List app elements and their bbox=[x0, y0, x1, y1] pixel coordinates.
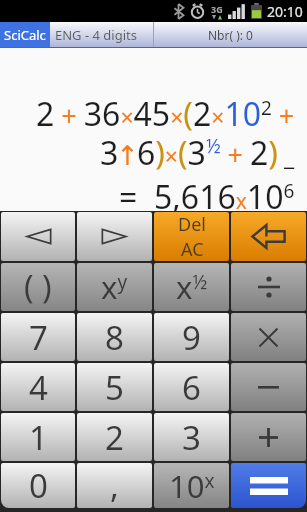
staticText: 20:10 bbox=[267, 2, 303, 21]
button[interactable]: 9 bbox=[154, 313, 229, 361]
button[interactable]: 8 bbox=[77, 313, 152, 361]
button[interactable]: 1 bbox=[1, 413, 75, 461]
staticText: 8 bbox=[105, 315, 124, 360]
staticText: x½ bbox=[176, 266, 208, 308]
button[interactable]: SciCalc bbox=[0, 22, 153, 47]
button[interactable] bbox=[231, 363, 306, 411]
staticText: 3 bbox=[182, 415, 201, 460]
button[interactable]: 4 bbox=[1, 363, 75, 411]
button[interactable] bbox=[1, 212, 75, 261]
staticText: 5 bbox=[105, 365, 124, 410]
button[interactable] bbox=[231, 313, 306, 361]
staticText: 0 bbox=[29, 463, 48, 508]
button[interactable] bbox=[231, 212, 306, 261]
staticText: 2 + 36×45×(2×102 + bbox=[36, 92, 295, 136]
button[interactable] bbox=[77, 212, 152, 261]
button[interactable]: 7 bbox=[1, 313, 75, 361]
staticText: 7 bbox=[29, 315, 48, 360]
button[interactable]: 10x bbox=[154, 463, 229, 508]
staticText: , bbox=[110, 463, 119, 508]
button[interactable] bbox=[231, 263, 306, 311]
button[interactable]: Del bbox=[154, 212, 229, 261]
staticText: AC bbox=[181, 237, 204, 261]
staticText: 3↑6)×(3½ + 2) _ bbox=[100, 131, 295, 175]
button[interactable]: , bbox=[77, 463, 152, 508]
button[interactable]: Nbr( ): 0 bbox=[154, 22, 307, 47]
staticText: ( ) bbox=[24, 265, 52, 309]
button[interactable]: x½ bbox=[154, 263, 229, 311]
button[interactable] bbox=[231, 463, 306, 508]
button[interactable]: xy bbox=[77, 263, 152, 311]
button[interactable]: 2 bbox=[77, 413, 152, 461]
staticText: 3G bbox=[211, 3, 223, 15]
staticText: ENG - 4 digits bbox=[55, 26, 137, 44]
staticText: 9 bbox=[182, 315, 201, 360]
staticText: Nbr( ): 0 bbox=[208, 27, 253, 43]
button[interactable]: ( ) bbox=[1, 263, 75, 311]
staticText: SciCalc bbox=[4, 26, 46, 44]
staticText: 2 bbox=[105, 415, 124, 460]
staticText: xy bbox=[101, 266, 128, 308]
button[interactable]: 0 bbox=[1, 463, 75, 508]
staticText: 6 bbox=[182, 365, 201, 410]
staticText: 4 bbox=[29, 365, 48, 410]
staticText: 1 bbox=[29, 415, 48, 460]
button[interactable]: 3 bbox=[154, 413, 229, 461]
staticText: = 5,616x106 bbox=[119, 175, 295, 219]
button[interactable]: 6 bbox=[154, 363, 229, 411]
button[interactable] bbox=[231, 413, 306, 461]
button[interactable]: 5 bbox=[77, 363, 152, 411]
staticText: Del bbox=[178, 212, 206, 237]
staticText: 10x bbox=[169, 465, 215, 507]
